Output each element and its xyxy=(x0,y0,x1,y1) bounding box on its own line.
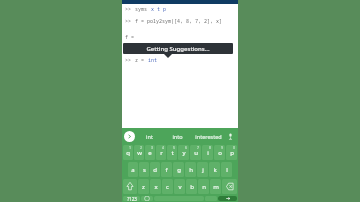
staticText: y xyxy=(182,149,186,157)
staticText: >> xyxy=(125,6,135,13)
staticText: 1 xyxy=(129,145,132,150)
button[interactable]: Shift xyxy=(123,179,137,194)
button[interactable]: z xyxy=(138,179,149,194)
button[interactable]: v xyxy=(174,179,185,194)
staticText: 3 xyxy=(151,145,154,150)
button[interactable]: j xyxy=(197,162,208,177)
staticText: z xyxy=(142,183,145,191)
staticText: 5 xyxy=(173,145,176,150)
staticText: q xyxy=(126,149,130,157)
button[interactable]: a xyxy=(128,162,138,177)
button[interactable]: w xyxy=(134,145,144,160)
staticText: r xyxy=(160,149,163,157)
button[interactable]: int xyxy=(135,128,163,144)
button[interactable]: interested xyxy=(191,128,225,144)
staticText: 4 xyxy=(162,145,165,150)
staticText: h xyxy=(189,166,193,174)
button[interactable]: d xyxy=(150,162,160,177)
staticText: 6 xyxy=(185,145,188,150)
button[interactable]: s xyxy=(139,162,149,177)
button[interactable]: Expand toolbar xyxy=(124,131,135,142)
staticText: 9 xyxy=(221,145,224,150)
staticText: x t p xyxy=(151,6,167,13)
button[interactable]: p xyxy=(226,145,237,160)
button[interactable]: y xyxy=(178,145,189,160)
button[interactable]: l xyxy=(221,162,232,177)
button[interactable]: Getting Suggestions... xyxy=(123,43,233,54)
button[interactable]: m xyxy=(210,179,221,194)
button[interactable]: Voice input xyxy=(225,131,236,142)
staticText: j xyxy=(202,166,204,174)
staticText: m xyxy=(213,183,219,191)
staticText: f = poly2sym([4, 8, 7, 2], x] xyxy=(135,18,223,25)
button[interactable]: i xyxy=(202,145,213,160)
staticText: d xyxy=(153,166,157,174)
staticText: v xyxy=(178,183,182,191)
button[interactable]: b xyxy=(186,179,197,194)
staticText: k xyxy=(213,166,217,174)
button[interactable]: t xyxy=(167,145,177,160)
button[interactable]: x xyxy=(150,179,161,194)
staticText: 8 xyxy=(209,145,212,150)
staticText: u xyxy=(194,149,198,157)
button[interactable]: f xyxy=(161,162,172,177)
staticText: p xyxy=(230,149,234,157)
staticText: x xyxy=(154,183,158,191)
button[interactable]: Emoji xyxy=(141,196,153,201)
button[interactable]: e xyxy=(145,145,155,160)
staticText: o xyxy=(218,149,222,157)
staticText: interested xyxy=(195,133,222,140)
button[interactable]: into xyxy=(163,128,191,144)
staticText: l xyxy=(226,166,228,174)
staticText: 0 xyxy=(233,145,236,150)
button[interactable]: h xyxy=(185,162,196,177)
staticText: into xyxy=(172,133,183,140)
button[interactable]: n xyxy=(198,179,209,194)
staticText: f xyxy=(165,166,168,174)
button[interactable]: k xyxy=(209,162,220,177)
button[interactable]: o xyxy=(214,145,225,160)
staticText: syms xyxy=(135,6,151,13)
button[interactable]: Backspace xyxy=(222,179,237,194)
staticText: b xyxy=(190,183,194,191)
button[interactable]: q xyxy=(123,145,133,160)
button[interactable]: g xyxy=(173,162,184,177)
staticText: >> xyxy=(125,57,135,64)
button[interactable]: Enter xyxy=(218,196,237,201)
staticText: f = xyxy=(125,34,135,41)
staticText: >> xyxy=(125,18,135,25)
staticText: int xyxy=(146,133,153,140)
staticText: Getting Suggestions... xyxy=(146,45,210,53)
staticText: z = xyxy=(135,57,148,64)
button[interactable]: u xyxy=(190,145,201,160)
staticText: 7 xyxy=(197,145,200,150)
staticText: s xyxy=(143,166,146,174)
staticText: g xyxy=(177,166,181,174)
staticText: n xyxy=(202,183,206,191)
staticText: int xyxy=(148,57,158,64)
button[interactable]: r xyxy=(156,145,166,160)
staticText: a xyxy=(131,166,135,174)
staticText: e xyxy=(148,149,152,157)
staticText: ?123 xyxy=(127,196,137,201)
staticText: c xyxy=(166,183,169,191)
button[interactable]: c xyxy=(162,179,173,194)
button[interactable]: ?123 xyxy=(123,196,140,201)
staticText: 2 xyxy=(140,145,143,150)
staticText: i xyxy=(207,149,209,157)
staticText: w xyxy=(137,149,142,157)
staticText: t xyxy=(171,149,174,157)
